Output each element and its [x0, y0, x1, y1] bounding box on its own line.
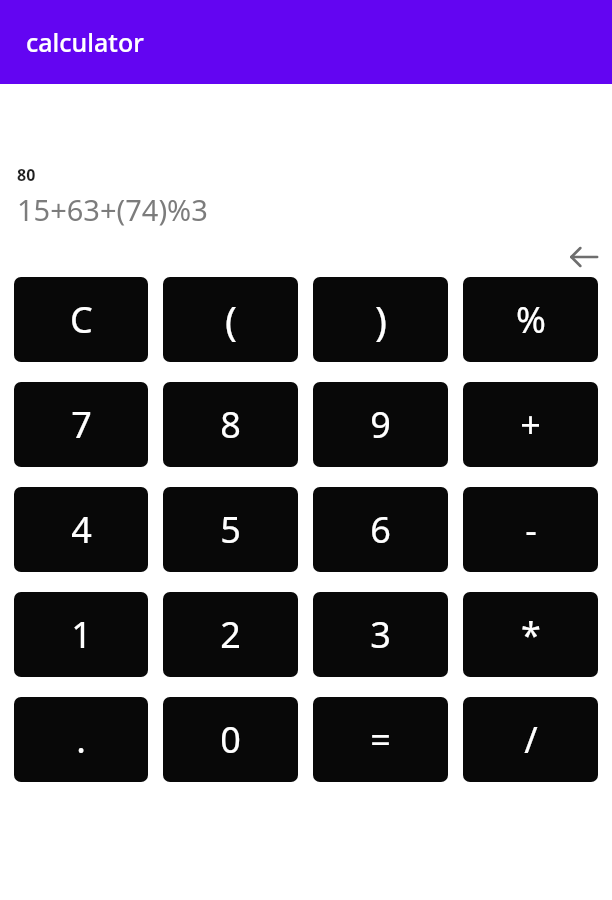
staticText: * [521, 610, 541, 659]
button[interactable]: + [463, 382, 598, 467]
button[interactable]: = [313, 697, 448, 782]
staticText: = [370, 715, 391, 764]
button[interactable]: 0 [163, 697, 298, 782]
staticText: C [70, 295, 93, 344]
button[interactable]: C [14, 277, 148, 362]
staticText: 7 [71, 400, 92, 449]
button[interactable]: 5 [163, 487, 298, 572]
button[interactable]: Backspace [564, 237, 604, 277]
button[interactable]: * [463, 592, 598, 677]
staticText: % [516, 295, 546, 344]
button[interactable]: ( [163, 277, 298, 362]
staticText: . [76, 715, 86, 764]
staticText: 5 [220, 505, 241, 554]
button[interactable]: - [463, 487, 598, 572]
staticText: - [525, 505, 537, 554]
button[interactable]: 2 [163, 592, 298, 677]
button[interactable]: 1 [14, 592, 148, 677]
button[interactable]: % [463, 277, 598, 362]
button[interactable]: 6 [313, 487, 448, 572]
button[interactable]: 4 [14, 487, 148, 572]
staticText: calculator [26, 25, 144, 59]
button[interactable]: 9 [313, 382, 448, 467]
staticText: ) [375, 293, 387, 347]
button[interactable]: 7 [14, 382, 148, 467]
button[interactable]: 3 [313, 592, 448, 677]
button[interactable]: / [463, 697, 598, 782]
staticText: 1 [71, 610, 92, 659]
staticText: 0 [220, 715, 241, 764]
button[interactable]: . [14, 697, 148, 782]
staticText: 3 [370, 610, 391, 659]
staticText: 80 [17, 164, 36, 186]
staticText: 4 [71, 505, 92, 554]
button[interactable]: 8 [163, 382, 298, 467]
staticText: 6 [370, 505, 391, 554]
staticText: 15+63+(74)%3 [17, 190, 208, 229]
staticText: 2 [220, 610, 241, 659]
staticText: 8 [220, 400, 241, 449]
staticText: / [524, 715, 538, 764]
staticText: + [520, 400, 541, 449]
staticText: 9 [370, 400, 391, 449]
button[interactable]: ) [313, 277, 448, 362]
staticText: ( [225, 293, 237, 347]
